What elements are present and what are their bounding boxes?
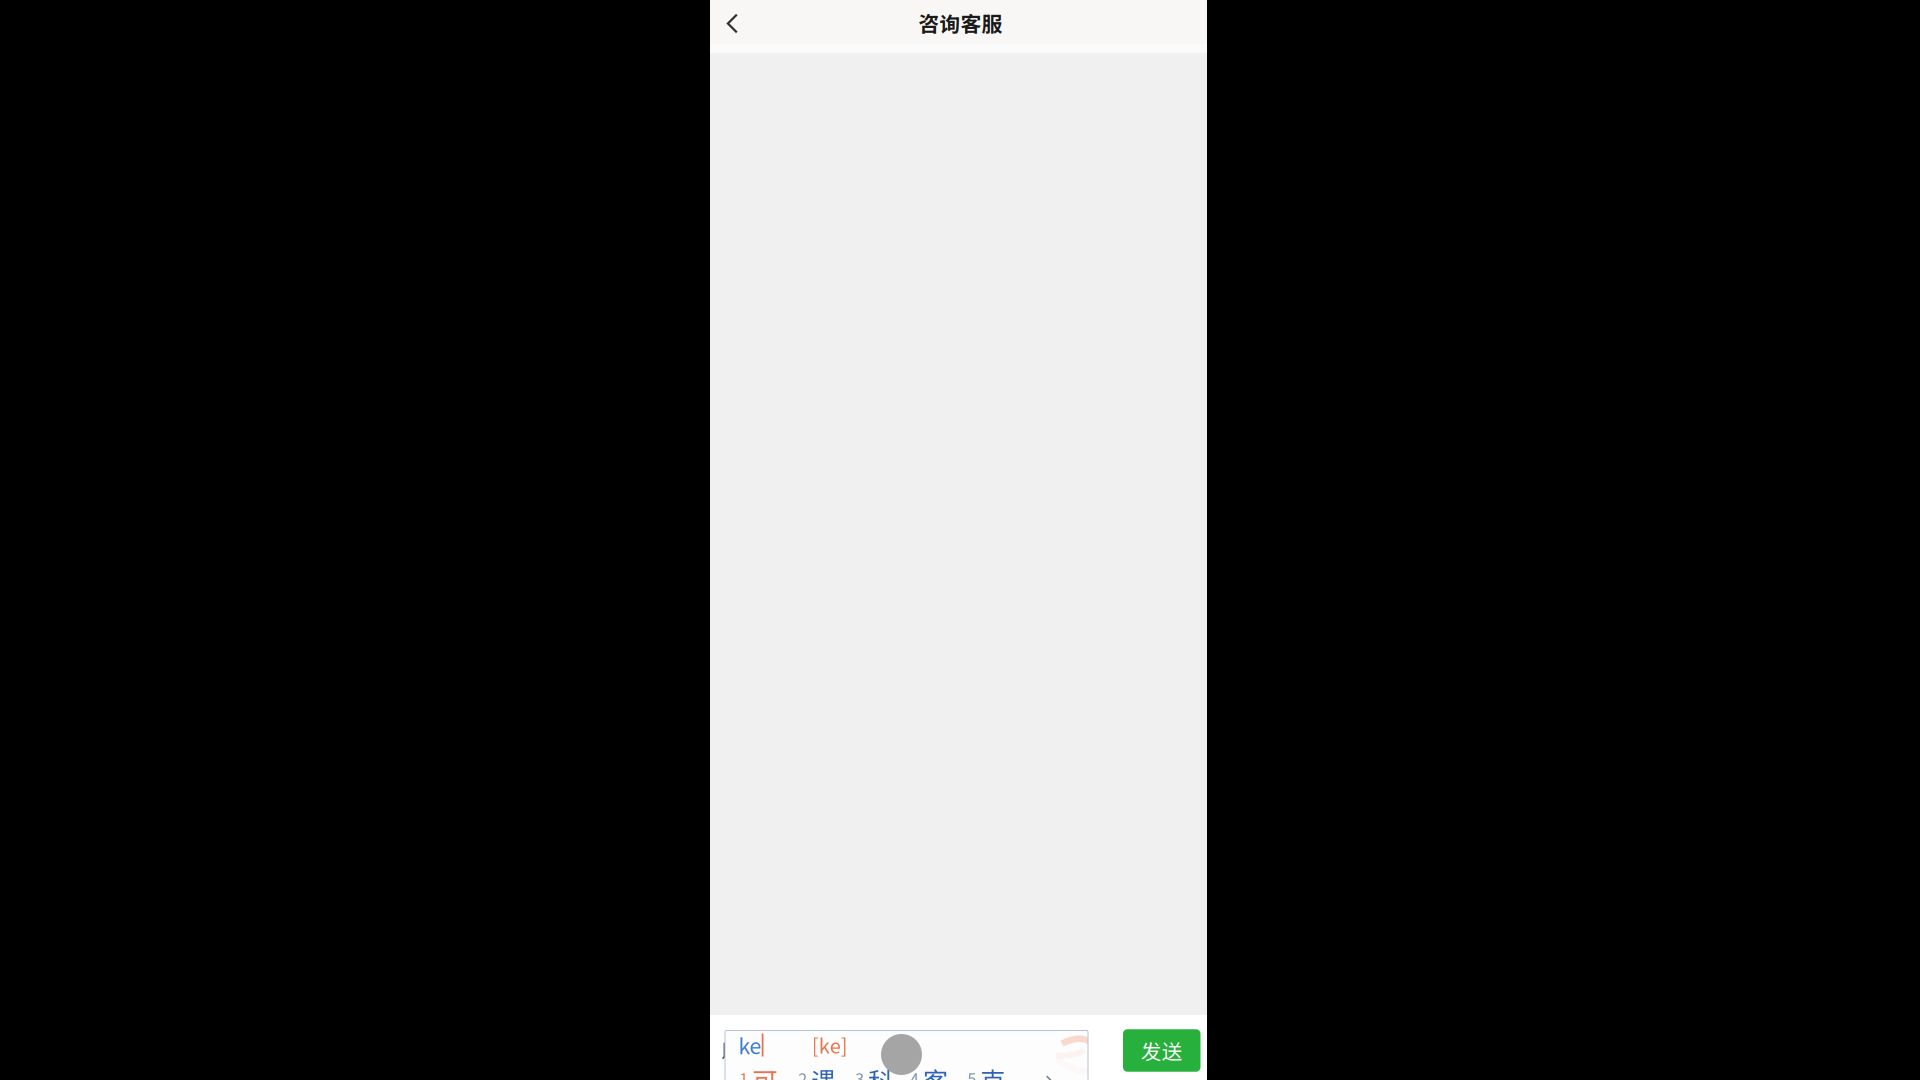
- button[interactable]: 5: [967, 1061, 1007, 1080]
- button[interactable]: 1: [739, 1061, 779, 1080]
- staticText: ke: [738, 1029, 761, 1060]
- button[interactable]: 发送: [1123, 1029, 1200, 1072]
- staticText: 3: [855, 1067, 864, 1080]
- button[interactable]: Back: [710, 0, 754, 53]
- staticText: 遇: [811, 1061, 836, 1080]
- staticText: 咨询客服: [918, 8, 1002, 38]
- button[interactable]: Message field: [724, 1026, 1087, 1068]
- staticText: [ke]: [812, 1030, 848, 1059]
- staticText: 可: [752, 1061, 777, 1080]
- staticText: 1: [739, 1067, 748, 1080]
- button[interactable]: 4: [910, 1061, 950, 1080]
- button[interactable]: More candidates: [1045, 1075, 1067, 1080]
- staticText: 客: [923, 1061, 948, 1080]
- button[interactable]: 3: [855, 1061, 895, 1080]
- staticText: 克: [980, 1061, 1005, 1080]
- staticText: 4: [910, 1067, 919, 1080]
- staticText: 发送: [1141, 1035, 1183, 1065]
- staticText: 科: [868, 1061, 893, 1080]
- staticText: 2: [798, 1067, 807, 1080]
- button[interactable]: 2: [798, 1061, 838, 1080]
- staticText: 5: [967, 1067, 976, 1080]
